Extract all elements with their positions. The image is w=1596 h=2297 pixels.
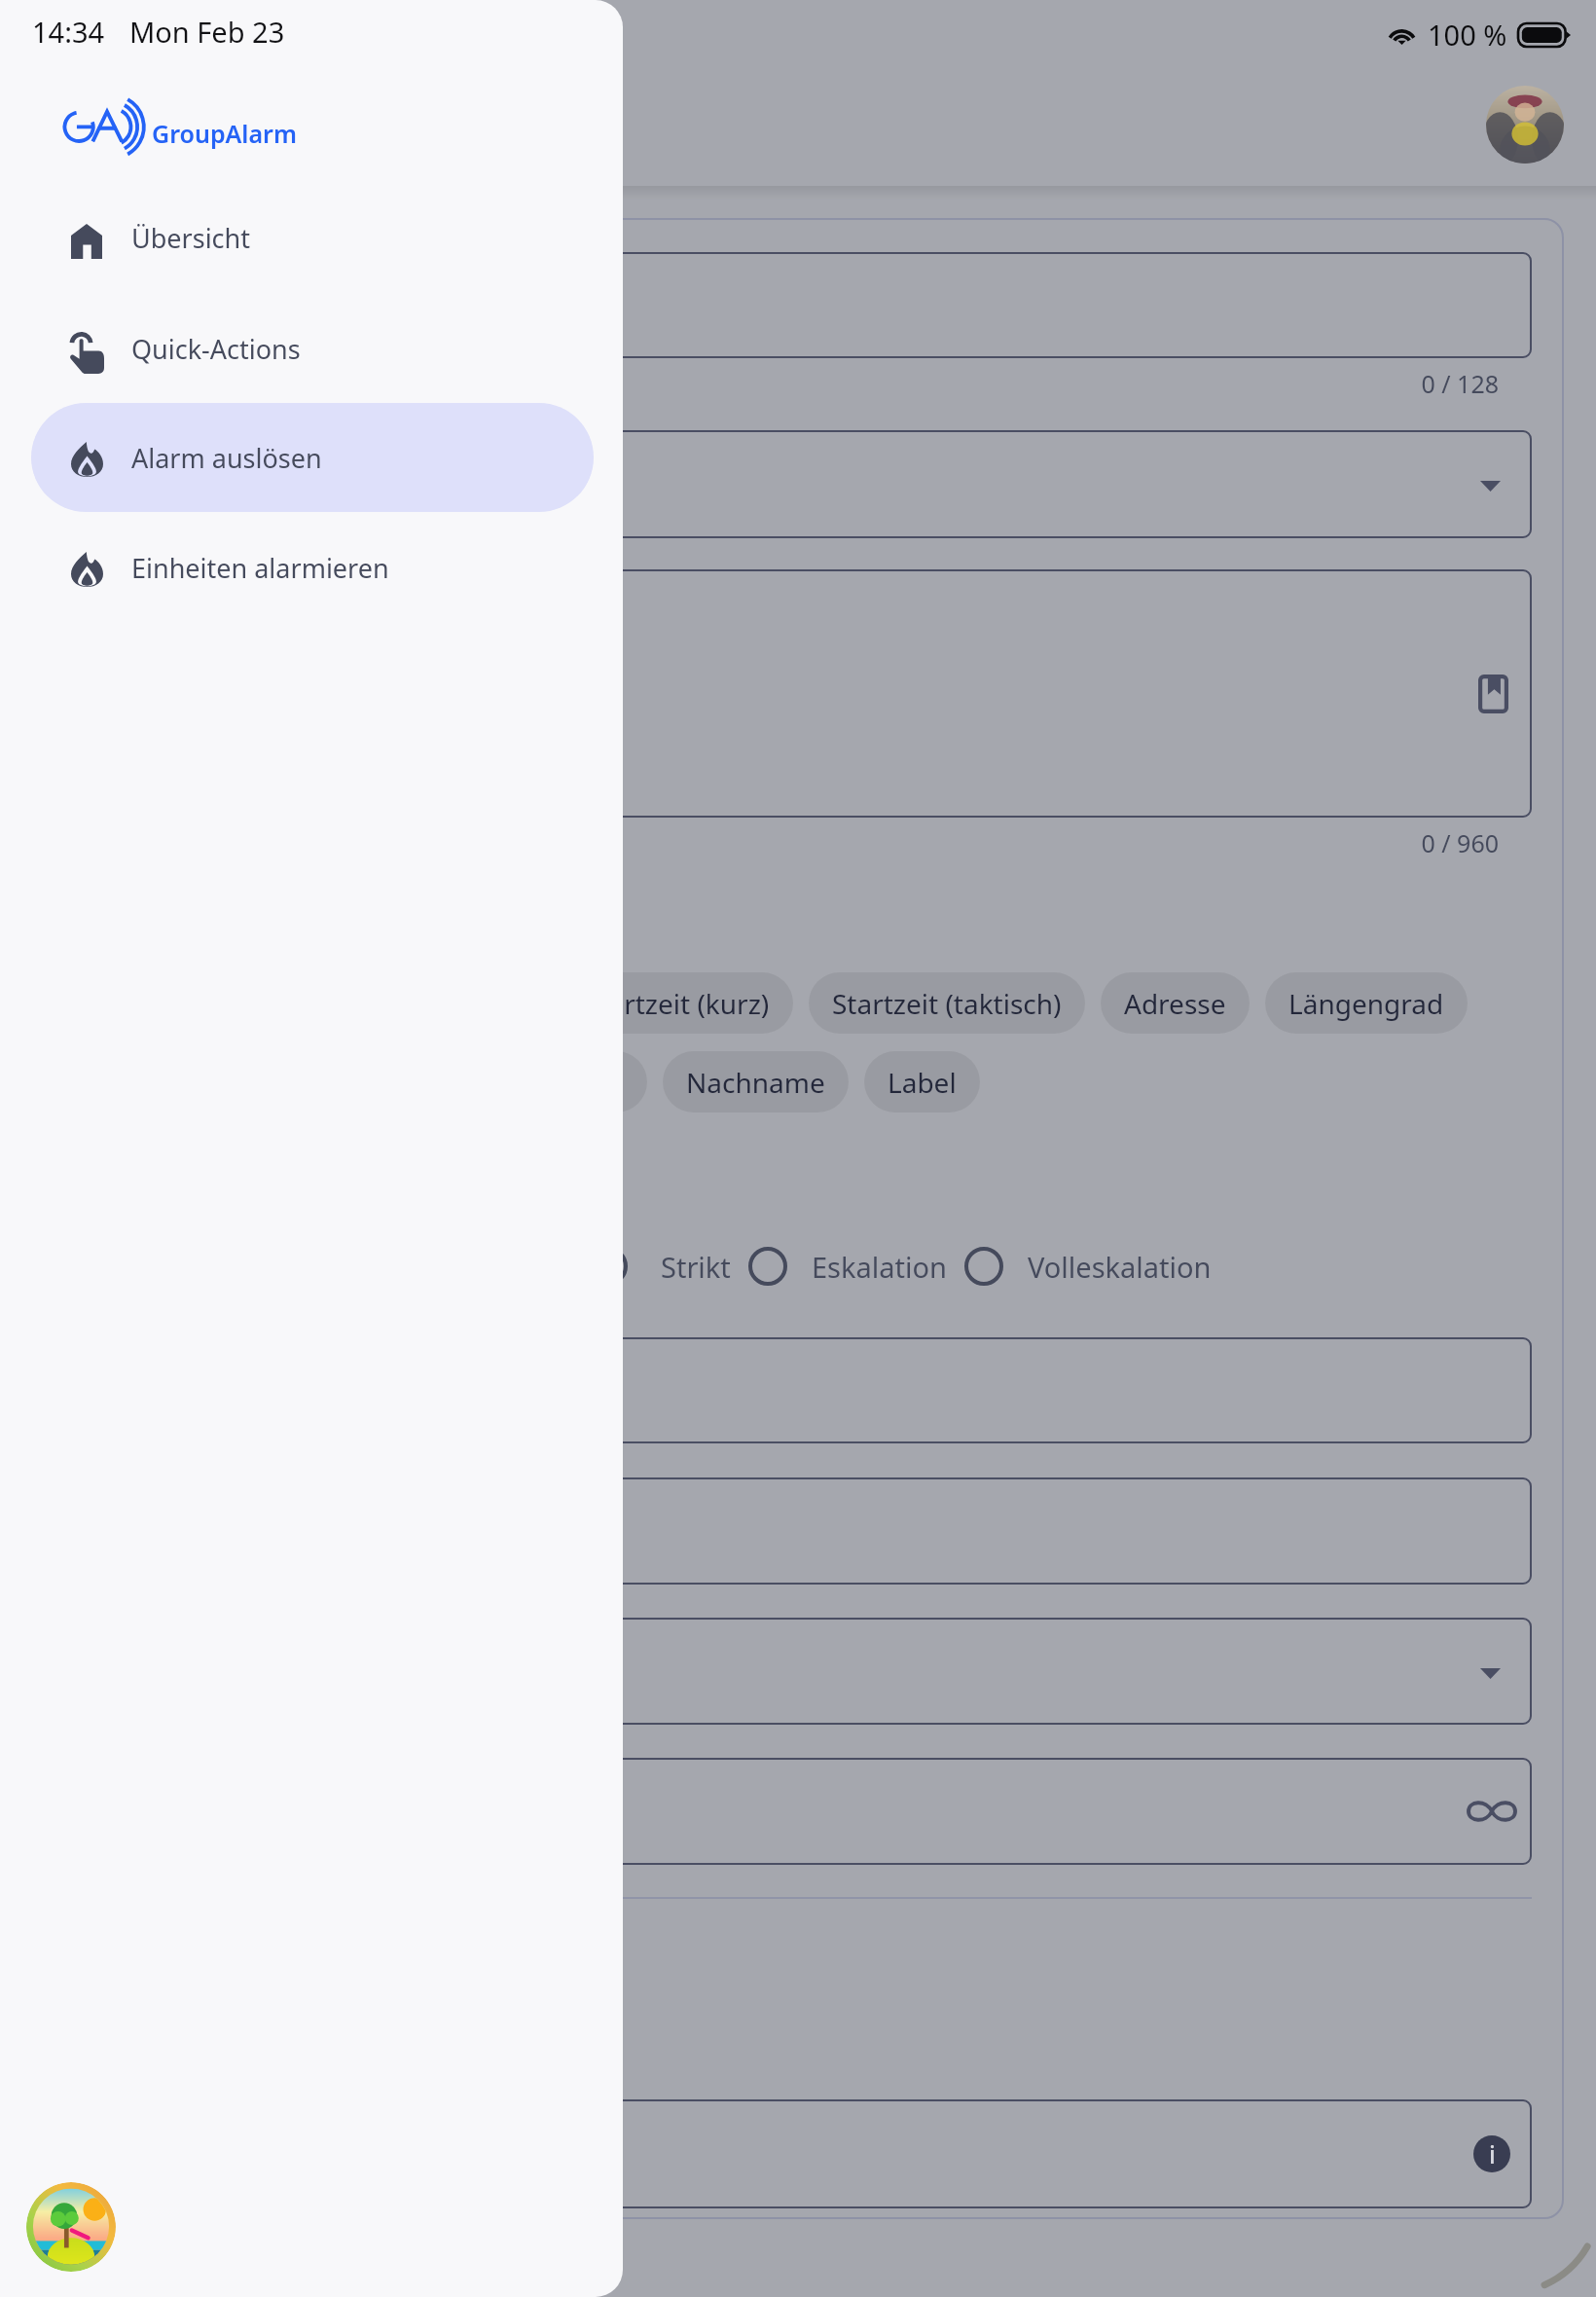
button[interactable]: Label [864,1051,980,1112]
staticText: Adresse [1124,985,1226,1022]
button[interactable] [65,252,1532,358]
staticText: Vorname [507,1064,624,1101]
button[interactable]: Längengrad [1265,972,1468,1034]
button[interactable]: Profile [1486,86,1564,164]
staticText: Übersicht [131,220,251,256]
staticText: 100 % [1428,16,1507,54]
button[interactable]: Startzeit (kurz) [561,972,793,1034]
button[interactable]: Einheiten alarmieren [31,513,594,622]
button[interactable]: Select option [739,1237,797,1295]
staticText: 0 / 960 [1109,826,1499,859]
button[interactable] [65,1337,1532,1443]
staticText: GroupAlarm [152,117,297,150]
staticText: Quick-Actions [131,331,301,367]
button[interactable]: Select option [955,1237,1013,1295]
button[interactable]: Alarm auslösen [31,403,594,512]
button[interactable]: Startzeit (taktisch) [809,972,1085,1034]
staticText: Alarm auslösen [131,440,322,476]
button[interactable] [65,1618,1532,1725]
staticText: 0 / 128 [1109,367,1499,400]
button[interactable]: Open app [26,2182,116,2272]
staticText: Startzeit (taktisch) [832,985,1062,1022]
staticText: i [1489,2137,1496,2170]
staticText: Nachname [686,1064,825,1101]
button[interactable]: Adresse [1101,972,1250,1034]
staticText: Volleskalation [1028,1248,1212,1286]
button[interactable] [65,1758,1532,1865]
button[interactable] [65,569,1532,818]
button[interactable]: Übersicht [31,183,594,292]
button[interactable]: Select option [579,1237,637,1295]
button[interactable]: Quick-Actions [31,294,594,403]
button[interactable] [65,430,1532,538]
staticText: Startzeit (kurz) [584,985,770,1022]
button[interactable] [65,1477,1532,1585]
button[interactable]: i [65,2099,1532,2208]
staticText: Strikt [661,1248,731,1286]
staticText: 14:34 [32,13,105,51]
button[interactable]: Vorname [484,1051,647,1112]
staticText: Mon Feb 23 [129,13,285,51]
button[interactable]: Nachname [663,1051,849,1112]
staticText: Eskalation [812,1248,947,1286]
staticText: Längengrad [1288,985,1444,1022]
staticText: Label [888,1064,957,1101]
staticText: Einheiten alarmieren [131,550,389,586]
